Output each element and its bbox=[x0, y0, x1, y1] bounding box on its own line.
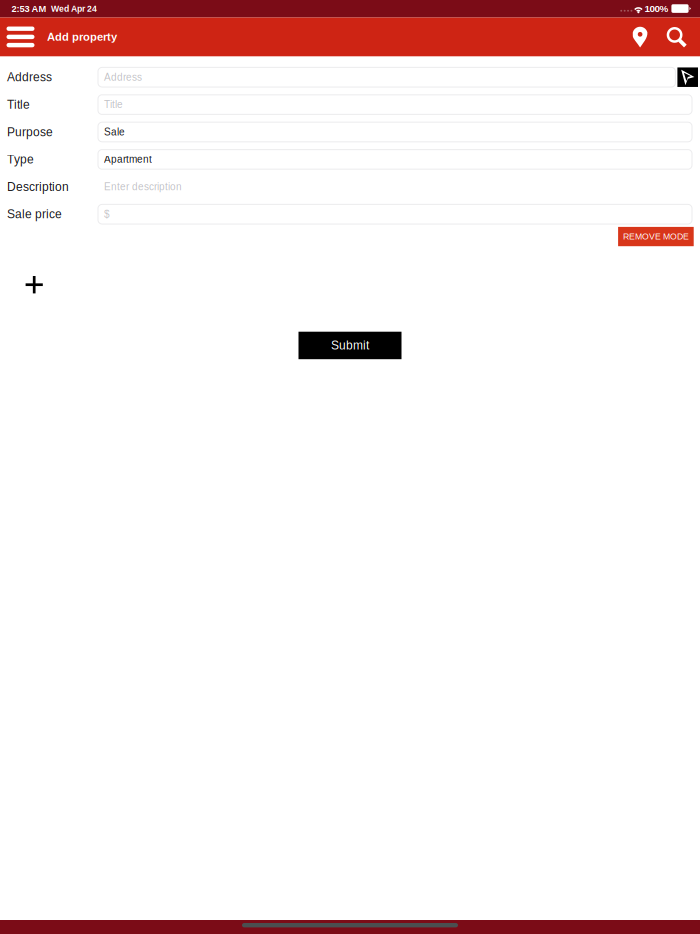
staticText: Submit bbox=[331, 339, 369, 352]
staticText: Title bbox=[7, 98, 30, 111]
staticText: Title bbox=[104, 99, 123, 110]
staticText: Address bbox=[104, 72, 142, 83]
staticText: 100% bbox=[645, 3, 669, 14]
staticText: Sale bbox=[104, 126, 125, 138]
button[interactable]: Sale bbox=[98, 122, 692, 142]
button[interactable]: Enter description bbox=[98, 177, 692, 197]
staticText: Address bbox=[7, 70, 52, 84]
staticText: Wed Apr 24 bbox=[51, 4, 97, 14]
staticText: Add property bbox=[47, 31, 117, 43]
button[interactable]: Address bbox=[98, 67, 675, 87]
staticText: 2:53 AM bbox=[11, 3, 46, 14]
staticText: Purpose bbox=[7, 125, 53, 139]
button[interactable]: Menu bbox=[3, 17, 37, 56]
button[interactable]: Title bbox=[98, 95, 692, 114]
staticText: Apartment bbox=[104, 154, 152, 165]
button[interactable]: $ bbox=[98, 204, 692, 224]
staticText: Description bbox=[7, 180, 69, 193]
button[interactable]: Add photo bbox=[16, 267, 52, 303]
button[interactable]: Pick location on map bbox=[677, 67, 698, 87]
button[interactable]: REMOVE MODE bbox=[618, 227, 694, 246]
staticText: REMOVE MODE bbox=[623, 232, 689, 241]
staticText: $ bbox=[104, 209, 110, 220]
staticText: Sale price bbox=[7, 207, 62, 221]
button[interactable]: Map bbox=[621, 17, 658, 56]
button[interactable]: Apartment bbox=[98, 150, 692, 169]
staticText: Enter description bbox=[104, 181, 182, 192]
staticText: Type bbox=[7, 153, 34, 166]
button[interactable]: Submit bbox=[298, 332, 401, 359]
button[interactable]: Search bbox=[658, 17, 694, 56]
